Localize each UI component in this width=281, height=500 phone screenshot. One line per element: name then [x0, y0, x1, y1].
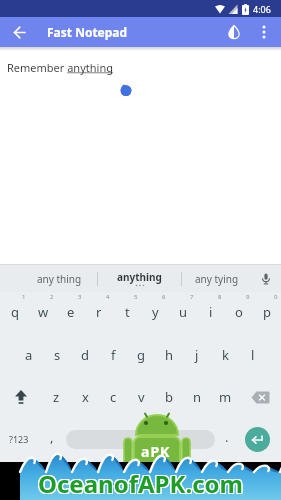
button[interactable]: s: [43, 334, 71, 376]
staticText: m: [219, 388, 232, 406]
staticText: r: [96, 303, 102, 321]
button[interactable]: [0, 376, 42, 418]
button[interactable]: any tying: [182, 265, 251, 292]
button[interactable]: c: [99, 376, 127, 418]
staticText: v: [138, 388, 145, 406]
staticText: l: [251, 346, 255, 364]
staticText: h: [165, 346, 174, 364]
staticText: OceanofAPK.com: [39, 468, 244, 500]
staticText: k: [222, 346, 229, 364]
staticText: j: [195, 346, 199, 364]
button[interactable]: 2: [29, 292, 57, 334]
staticText: .: [225, 428, 229, 446]
button[interactable]: 0: [253, 292, 281, 334]
button[interactable]: .: [215, 418, 239, 460]
button[interactable]: any thing: [22, 265, 97, 292]
staticText: s: [54, 346, 61, 364]
staticText: o: [235, 303, 243, 321]
staticText: z: [53, 388, 60, 406]
staticText: OceanofAPK.com: [39, 467, 244, 500]
staticText: u: [179, 303, 188, 321]
staticText: y: [152, 303, 159, 321]
staticText: 2: [50, 293, 54, 301]
staticText: t: [125, 303, 130, 321]
staticText: 3: [78, 293, 82, 301]
staticText: OceanofAPK.com: [39, 466, 244, 499]
button[interactable]: 5: [113, 292, 141, 334]
staticText: OceanofAPK.com: [38, 468, 243, 500]
staticText: OceanofAPK.com: [37, 468, 242, 500]
staticText: a: [25, 346, 33, 364]
button[interactable]: [239, 418, 281, 460]
button[interactable]: 9: [225, 292, 253, 334]
staticText: ,: [50, 428, 54, 446]
button[interactable]: 6: [141, 292, 169, 334]
button[interactable]: f: [99, 334, 127, 376]
button[interactable]: m: [211, 376, 239, 418]
button[interactable]: [251, 265, 281, 292]
staticText: d: [81, 346, 89, 364]
button[interactable]: n: [183, 376, 211, 418]
button[interactable]: 7: [169, 292, 197, 334]
button[interactable]: v: [127, 376, 155, 418]
staticText: 4: [106, 293, 110, 301]
staticText: anything: [117, 270, 162, 284]
staticText: 5: [134, 293, 138, 301]
button[interactable]: [223, 21, 245, 43]
button[interactable]: 1: [0, 292, 29, 334]
staticText: 7: [190, 293, 194, 301]
button[interactable]: [10, 23, 28, 41]
button[interactable]: [66, 430, 215, 449]
button[interactable]: anything: [98, 265, 181, 292]
staticText: w: [38, 303, 49, 321]
staticText: e: [67, 303, 75, 321]
button[interactable]: l: [239, 334, 267, 376]
button[interactable]: x: [71, 376, 99, 418]
staticText: 1: [22, 293, 26, 301]
button[interactable]: [239, 376, 281, 418]
button[interactable]: 4: [85, 292, 113, 334]
staticText: Fast Notepad: [47, 24, 128, 40]
staticText: q: [11, 303, 19, 321]
staticText: g: [137, 346, 145, 364]
staticText: OceanofAPK.com: [38, 467, 243, 500]
staticText: x: [82, 388, 89, 406]
staticText: 9: [246, 293, 250, 301]
staticText: f: [111, 346, 116, 364]
button[interactable]: g: [127, 334, 155, 376]
button[interactable]: d: [71, 334, 99, 376]
button[interactable]: 3: [57, 292, 85, 334]
button[interactable]: a: [15, 334, 43, 376]
button[interactable]: ?123: [0, 418, 38, 460]
button[interactable]: ,: [38, 418, 66, 460]
staticText: ?123: [9, 433, 29, 445]
staticText: any tying: [195, 272, 239, 286]
button[interactable]: z: [42, 376, 71, 418]
staticText: 0: [274, 293, 278, 301]
staticText: OceanofAPK.com: [38, 466, 243, 499]
staticText: aPK: [141, 442, 171, 461]
button[interactable]: j: [183, 334, 211, 376]
staticText: Remember anything: [7, 60, 113, 75]
staticText: n: [193, 388, 202, 406]
staticText: c: [110, 388, 117, 406]
button[interactable]: [255, 23, 273, 41]
staticText: any thing: [37, 272, 82, 286]
staticText: OceanofAPK.com: [37, 466, 242, 499]
button[interactable]: k: [211, 334, 239, 376]
staticText: 8: [218, 293, 222, 301]
button[interactable]: [245, 427, 270, 452]
staticText: i: [209, 303, 213, 321]
staticText: 4:06: [253, 3, 271, 15]
button[interactable]: h: [155, 334, 183, 376]
button[interactable]: 8: [197, 292, 225, 334]
staticText: 6: [162, 293, 166, 301]
staticText: OceanofAPK.com: [37, 467, 242, 500]
button[interactable]: b: [155, 376, 183, 418]
staticText: b: [165, 388, 173, 406]
staticText: p: [263, 303, 271, 321]
